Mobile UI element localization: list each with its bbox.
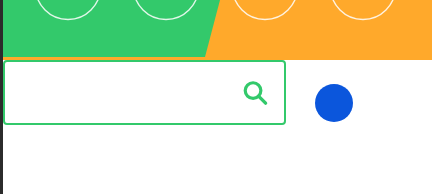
button[interactable] <box>3 60 286 125</box>
button[interactable]: Search <box>240 79 269 108</box>
button[interactable]: Action <box>315 84 353 122</box>
